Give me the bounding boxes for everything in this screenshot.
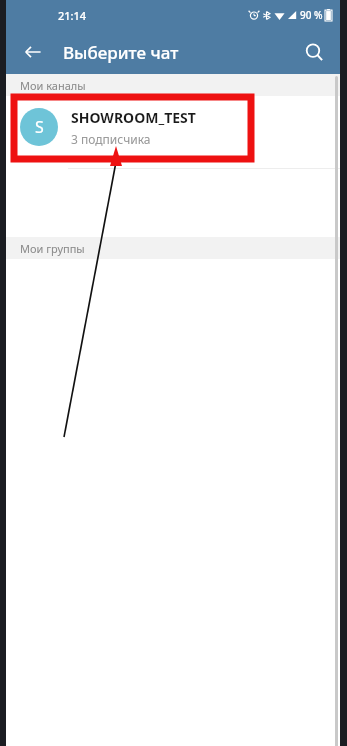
button[interactable]: Search — [296, 34, 332, 70]
staticText: 21:14 — [58, 8, 87, 23]
button[interactable]: S — [6, 96, 340, 158]
button[interactable]: Back — [16, 35, 50, 69]
staticText: SHOWROOM_TEST — [71, 108, 196, 127]
staticText: S — [35, 116, 44, 138]
staticText: Выберите чат — [63, 41, 179, 64]
staticText: 90 % — [300, 8, 323, 22]
staticText: Мои каналы — [20, 78, 86, 93]
staticText: Мои группы — [20, 241, 85, 256]
staticText: 3 подписчика — [71, 131, 151, 147]
